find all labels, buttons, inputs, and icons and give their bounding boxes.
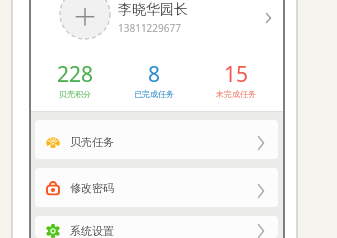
staticText: 李晓华园长 <box>118 1 188 19</box>
staticText: 228 <box>57 60 94 89</box>
staticText: 已完成任务 <box>134 89 174 99</box>
staticText: 15 <box>224 60 249 89</box>
button[interactable]: 8 <box>109 60 199 99</box>
button[interactable]: 15 <box>191 60 281 99</box>
button[interactable]: 228 <box>30 60 120 99</box>
staticText: 修改密码 <box>70 181 114 195</box>
button[interactable]: 贝壳任务 <box>35 120 278 159</box>
staticText: 贝壳任务 <box>70 135 114 149</box>
button[interactable]: 修改密码 <box>35 168 278 207</box>
staticText: 8 <box>148 60 161 89</box>
staticText: 系统设置 <box>70 224 114 238</box>
button[interactable] <box>59 0 111 40</box>
staticText: 未完成任务 <box>216 89 256 99</box>
staticText: 13811229677 <box>118 21 181 35</box>
staticText: 贝壳积分 <box>59 89 91 99</box>
button[interactable]: 系统设置 <box>35 216 278 238</box>
button[interactable] <box>30 0 283 52</box>
